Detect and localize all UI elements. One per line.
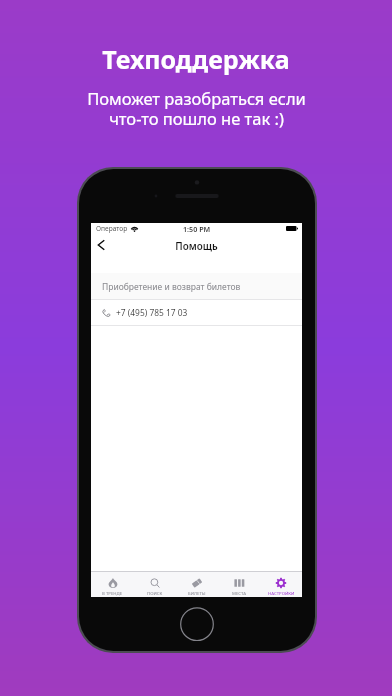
staticText: 1:50 PM (183, 224, 211, 234)
button[interactable]: В ТРЕНДЕ (91, 572, 134, 597)
button[interactable]: ПОИСК (134, 572, 176, 597)
staticText: НАСТРОЙКИ (268, 590, 295, 596)
button[interactable]: +7 (495) 785 17 03 (91, 299, 302, 326)
staticText: Приобретение и возврат билетов (102, 281, 241, 293)
button[interactable]: Назад (92, 234, 113, 255)
staticText: Техподдержка (102, 42, 290, 76)
staticText: МЕСТА (232, 590, 247, 596)
staticText: +7 (495) 785 17 03 (116, 307, 188, 318)
staticText: В ТРЕНДЕ (102, 590, 123, 596)
button[interactable]: БИЛЕТЫ (176, 572, 218, 597)
staticText: Поможет разобраться если что-то пошло не… (87, 87, 306, 130)
staticText: Помощь (91, 239, 302, 252)
button[interactable]: НАСТРОЙКИ (260, 572, 302, 597)
staticText: ПОИСК (147, 590, 163, 596)
staticText: БИЛЕТЫ (188, 590, 206, 596)
staticText: Оператор (96, 224, 128, 233)
button[interactable]: МЕСТА (218, 572, 260, 597)
